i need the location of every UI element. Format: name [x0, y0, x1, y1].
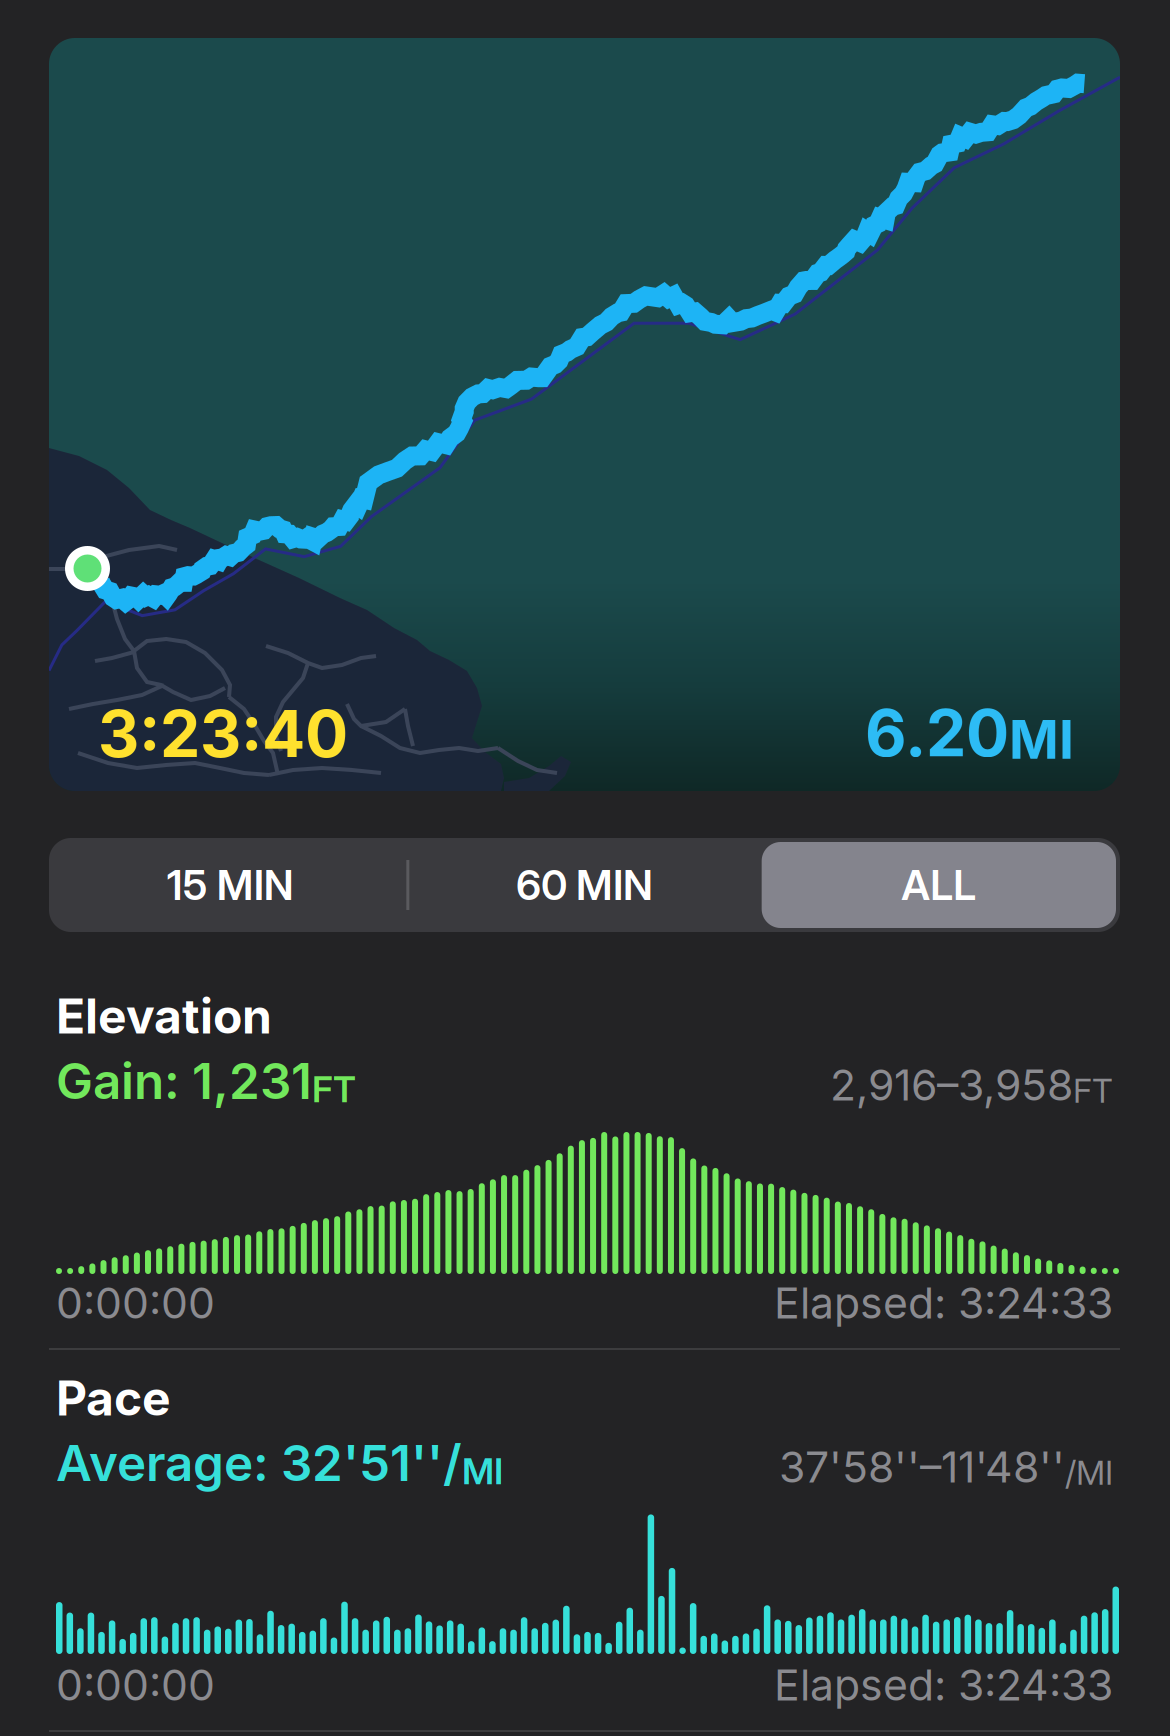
- staticText: 15 MIN: [167, 860, 294, 910]
- staticText: 0:00:00: [56, 1277, 215, 1329]
- staticText: FT: [312, 1067, 356, 1111]
- staticText: Elapsed: 3:24:33: [774, 1277, 1113, 1329]
- button[interactable]: ALL: [762, 838, 1116, 932]
- staticText: MI: [1009, 707, 1074, 772]
- staticText: Elapsed: 3:24:33: [774, 1659, 1113, 1711]
- staticText: 0:00:00: [56, 1659, 215, 1711]
- staticText: 60 MIN: [516, 860, 653, 910]
- staticText: Average: 32'51''/: [56, 1433, 462, 1493]
- staticText: MI: [462, 1449, 503, 1493]
- button[interactable]: 15 MIN: [53, 838, 407, 932]
- staticText: 37'58''–11'48'': [779, 1441, 1065, 1493]
- staticText: 6.20: [865, 694, 1009, 772]
- staticText: Pace: [56, 1369, 171, 1427]
- staticText: FT: [1073, 1070, 1113, 1111]
- staticText: /MI: [1065, 1452, 1113, 1493]
- staticText: ALL: [901, 860, 976, 910]
- staticText: 2,916–3,958: [830, 1059, 1073, 1111]
- button[interactable]: 60 MIN: [407, 838, 762, 932]
- staticText: Gain: 1,231: [56, 1051, 312, 1111]
- staticText: Elevation: [56, 987, 272, 1045]
- staticText: 3:23:40: [98, 695, 348, 772]
